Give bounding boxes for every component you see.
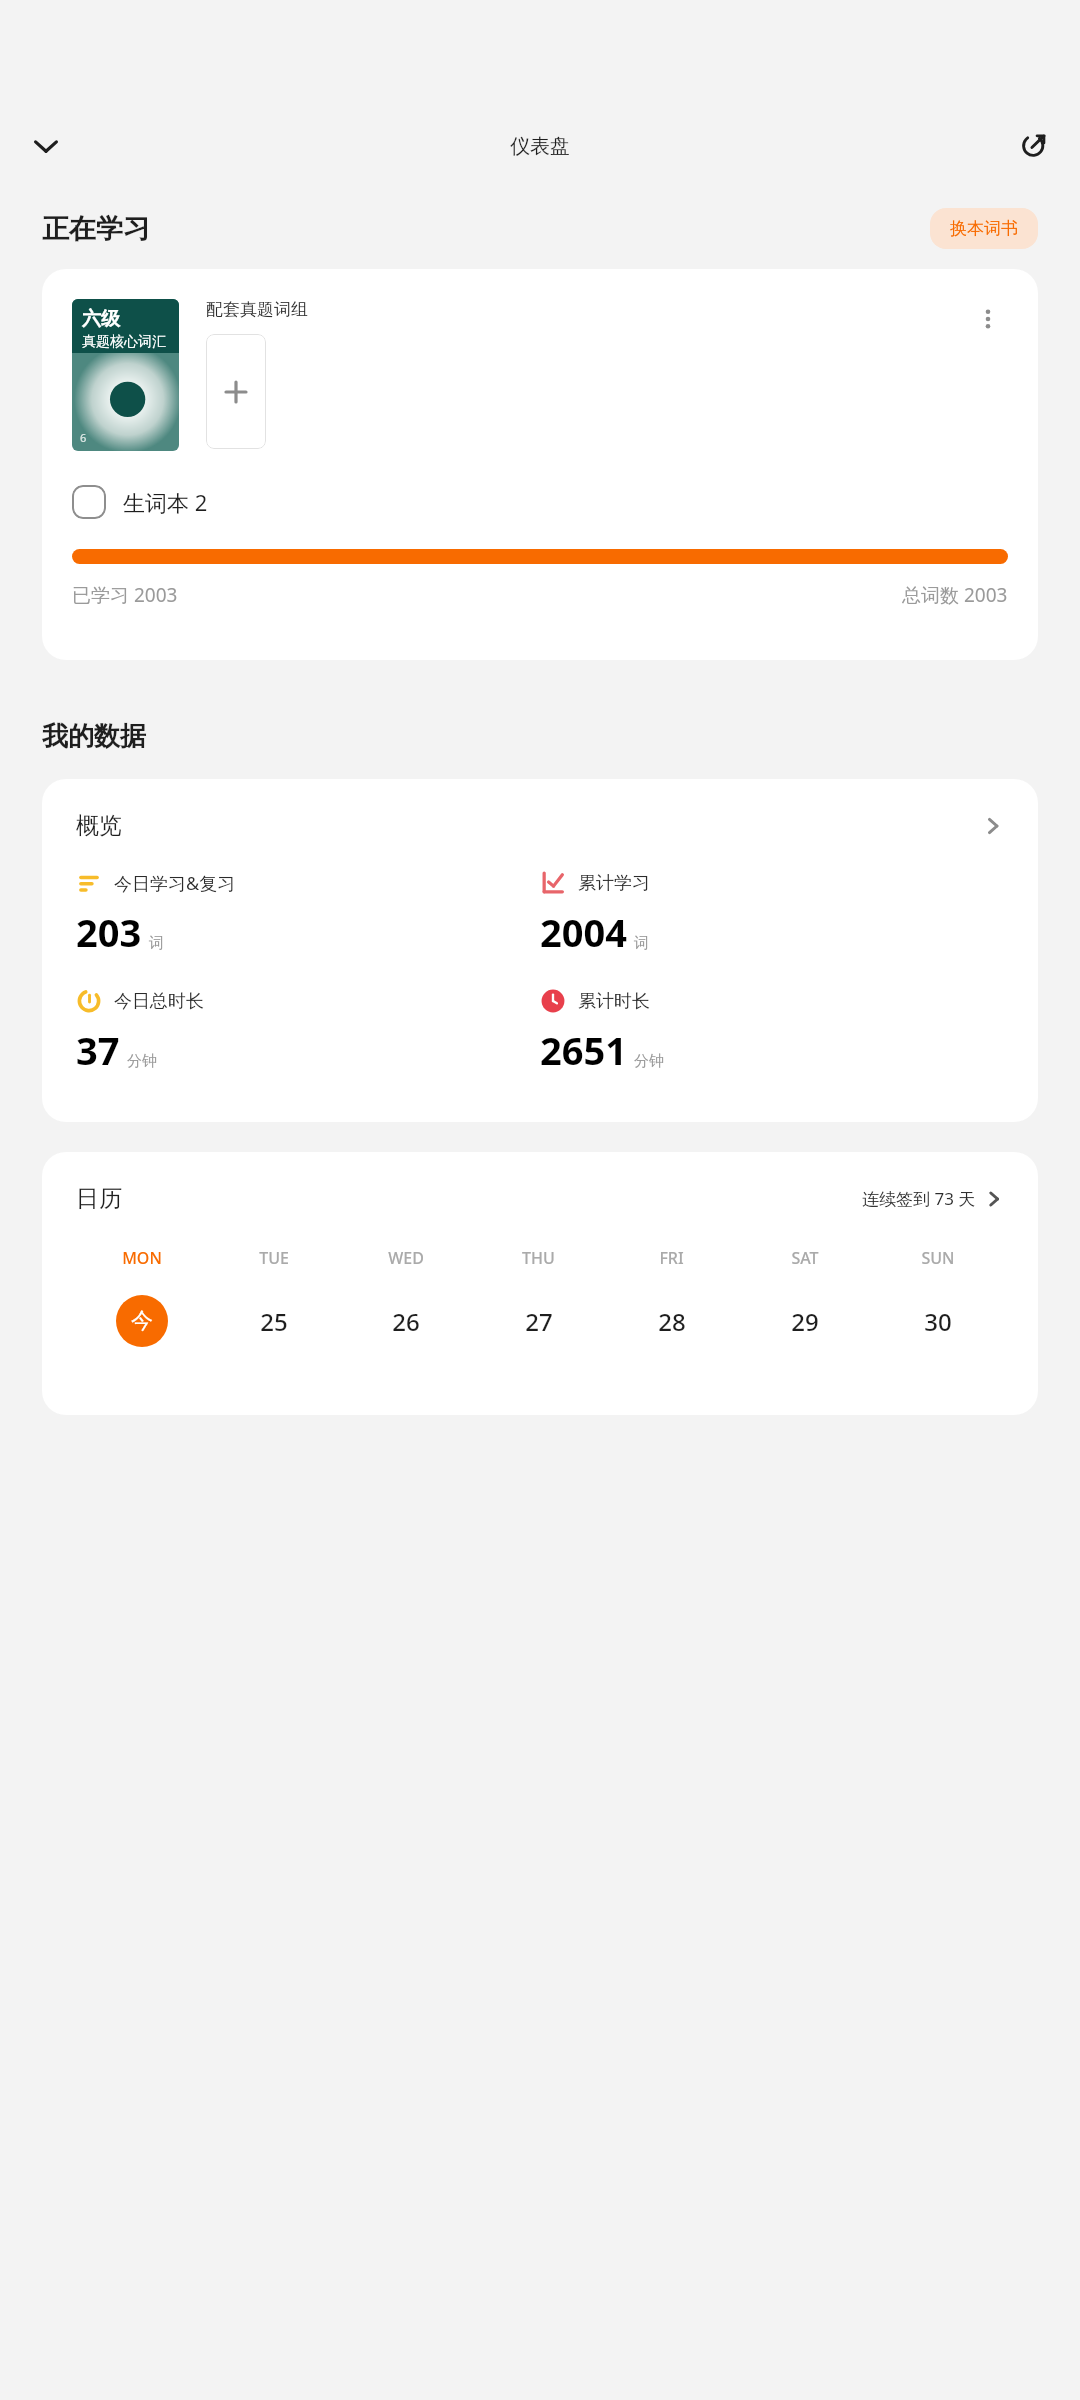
button[interactable]: 25 — [208, 1295, 340, 1347]
staticText: 27 — [525, 1305, 553, 1338]
button[interactable]: 28 — [605, 1295, 738, 1347]
staticText: 分钟 — [634, 1052, 664, 1071]
button[interactable]: 日历 — [42, 1152, 1038, 1415]
staticText: 分钟 — [127, 1052, 157, 1071]
button[interactable]: Add word list — [206, 334, 266, 449]
staticText: TUE — [259, 1247, 289, 1269]
staticText: 30 — [924, 1305, 952, 1338]
staticText: 26 — [392, 1305, 420, 1338]
staticText: 日历 — [76, 1184, 122, 1213]
button[interactable]: More options — [968, 299, 1008, 339]
button[interactable]: 换本词书 — [930, 208, 1038, 249]
button[interactable]: 30 — [871, 1295, 1004, 1347]
staticText: 25 — [260, 1305, 288, 1338]
button[interactable]: 概览 — [42, 779, 1038, 1122]
button[interactable]: 26 — [340, 1295, 472, 1347]
staticText: 已学习 2003 — [72, 582, 178, 608]
staticText: 今日总时长 — [114, 990, 204, 1013]
staticText: 六级 — [82, 307, 120, 331]
staticText: SAT — [791, 1247, 819, 1269]
staticText: 累计时长 — [578, 990, 650, 1013]
staticText: 2651 — [540, 1024, 627, 1076]
staticText: 正在学习 — [42, 212, 150, 246]
staticText: 我的数据 — [42, 720, 146, 753]
staticText: 真题核心词汇 — [82, 333, 166, 351]
staticText: FRI — [659, 1247, 684, 1269]
staticText: 连续签到 73 天 — [862, 1187, 976, 1210]
staticText: 总词数 2003 — [902, 582, 1008, 608]
staticText: 29 — [791, 1305, 819, 1338]
staticText: 配套真题词组 — [206, 299, 308, 320]
staticText: 今日学习&复习 — [114, 871, 236, 896]
staticText: THU — [522, 1247, 555, 1269]
staticText: SUN — [921, 1247, 955, 1269]
button[interactable]: 六级 — [42, 269, 1038, 660]
staticText: 2004 — [540, 906, 627, 958]
button[interactable]: Share — [1010, 122, 1058, 170]
staticText: 37 — [76, 1024, 120, 1076]
staticText: 生词本 2 — [123, 487, 208, 517]
staticText: 词 — [634, 934, 649, 953]
staticText: 203 — [76, 906, 142, 958]
button[interactable]: 27 — [472, 1295, 605, 1347]
staticText: 换本词书 — [950, 218, 1018, 239]
staticText: 累计学习 — [578, 872, 650, 895]
staticText: 6 — [80, 430, 87, 445]
staticText: 今 — [131, 1307, 153, 1335]
staticText: MON — [122, 1247, 162, 1269]
staticText: 仪表盘 — [510, 134, 570, 159]
staticText: 概览 — [76, 811, 122, 840]
button[interactable]: 生词本 2 — [72, 485, 208, 519]
staticText: WED — [388, 1247, 424, 1269]
staticText: 28 — [658, 1305, 686, 1338]
button[interactable]: Collapse — [22, 122, 70, 170]
button[interactable]: 29 — [738, 1295, 871, 1347]
staticText: 词 — [149, 934, 164, 953]
button[interactable]: 今 — [76, 1295, 208, 1347]
